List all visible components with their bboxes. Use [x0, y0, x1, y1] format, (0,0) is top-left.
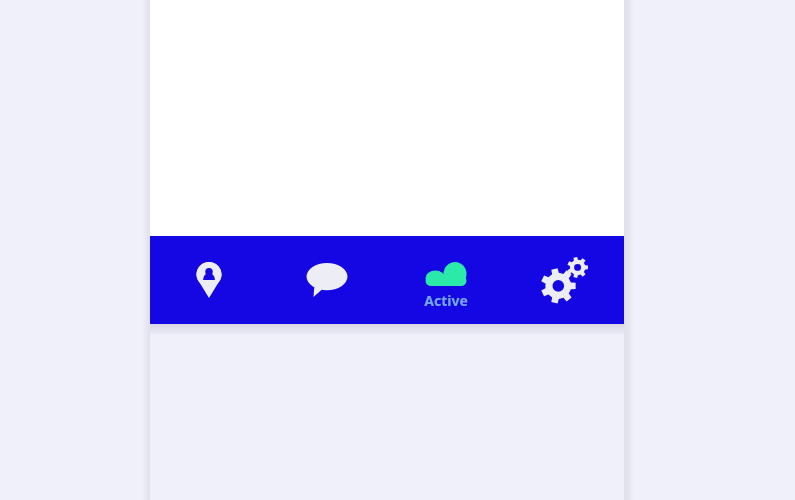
button[interactable]: Messages — [268, 236, 386, 324]
button[interactable]: Active — [386, 236, 505, 324]
button[interactable]: Settings — [505, 236, 624, 324]
staticText: Active — [424, 291, 468, 310]
button[interactable]: Nearby people — [150, 236, 268, 324]
